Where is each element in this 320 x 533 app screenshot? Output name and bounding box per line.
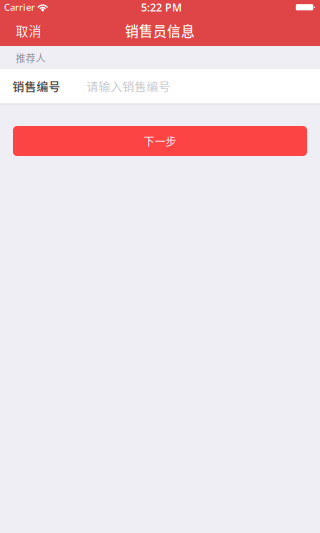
button[interactable]: 取消	[0, 14, 52, 46]
staticText: 销售编号	[12, 78, 60, 95]
staticText: 请输入销售编号	[86, 78, 170, 95]
staticText: 5:22 PM	[141, 0, 182, 14]
staticText: 下一步	[143, 133, 176, 149]
staticText: 销售员信息	[125, 20, 195, 40]
staticText: 取消	[16, 21, 42, 39]
button[interactable]: 销售编号	[0, 68, 320, 104]
staticText: Carrier	[4, 1, 35, 13]
staticText: 推荐人	[16, 51, 46, 65]
button[interactable]: 下一步	[13, 126, 307, 156]
